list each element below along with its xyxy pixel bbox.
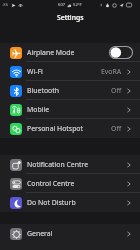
staticText: Off bbox=[111, 86, 122, 95]
staticText: Notification Centre bbox=[27, 160, 89, 169]
button[interactable]: Notification Centre bbox=[0, 155, 140, 174]
button[interactable]: Airplane Mode bbox=[0, 43, 140, 62]
staticText: Mobile bbox=[27, 105, 50, 114]
staticText: -86 bbox=[2, 2, 9, 8]
button[interactable]: Mobile bbox=[0, 100, 140, 119]
staticText: General bbox=[27, 229, 53, 238]
staticText: EvoRA bbox=[101, 67, 122, 76]
button[interactable]: Personal Hotspot bbox=[0, 119, 140, 138]
button[interactable]: Wi-Fi bbox=[0, 62, 140, 81]
staticText: Wi-Fi bbox=[27, 67, 43, 76]
staticText: Control Centre bbox=[27, 179, 75, 188]
staticText: Bluetooth bbox=[27, 86, 59, 95]
button[interactable]: General bbox=[0, 224, 140, 243]
button[interactable]: Bluetooth bbox=[0, 81, 140, 100]
staticText: Settings bbox=[57, 13, 84, 22]
staticText: Off bbox=[111, 124, 122, 133]
button[interactable]: Control Centre bbox=[0, 174, 140, 193]
button[interactable]: Do Not Disturb bbox=[0, 193, 140, 212]
staticText: 607 bbox=[58, 2, 66, 8]
staticText: Airplane Mode bbox=[27, 48, 75, 57]
staticText: Personal Hotspot bbox=[27, 124, 84, 133]
staticText: Do Not Disturb bbox=[27, 198, 76, 207]
staticText: 52°F bbox=[73, 2, 82, 8]
